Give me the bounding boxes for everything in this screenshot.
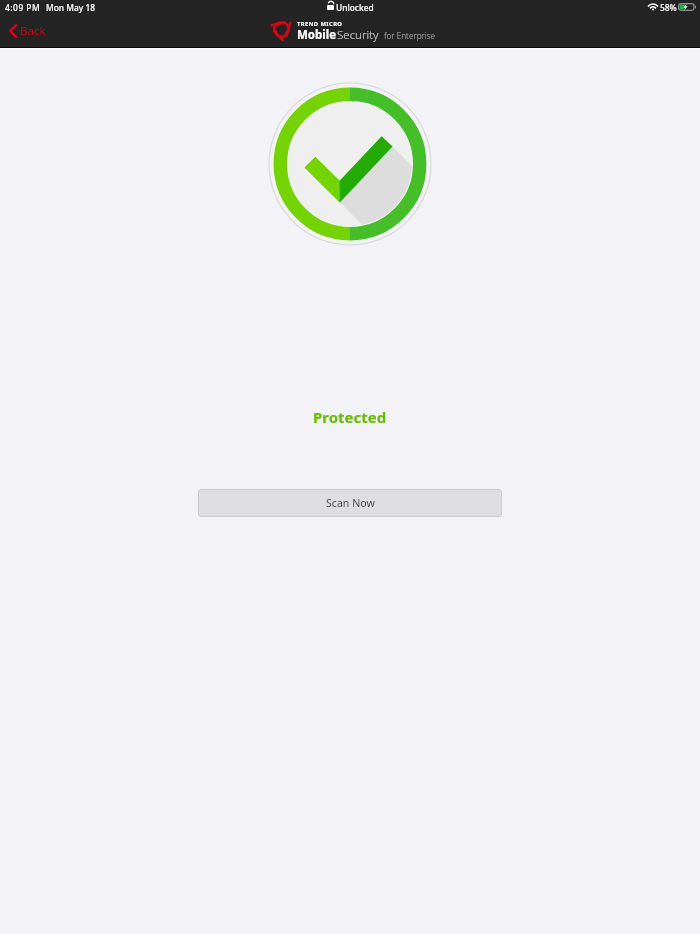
staticText: Protected: [313, 407, 387, 427]
button[interactable]: Scan Now: [199, 490, 501, 516]
button[interactable]: Back: [9, 23, 46, 39]
staticText: 4:09 PM: [5, 2, 41, 13]
staticText: for Enterprise: [384, 30, 436, 41]
staticText: TREND MICRO: [297, 20, 343, 28]
staticText: Unlocked: [336, 2, 374, 13]
staticText: 58%: [660, 2, 677, 13]
staticText: Security: [337, 27, 379, 43]
staticText: Mon May 18: [46, 2, 95, 13]
staticText: Mobile: [297, 27, 337, 43]
staticText: Scan Now: [326, 496, 375, 510]
staticText: Back: [20, 23, 46, 39]
